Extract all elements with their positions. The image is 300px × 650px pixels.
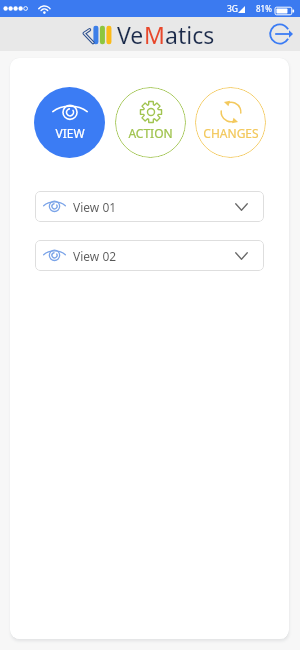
- button[interactable]: View 01: [35, 191, 264, 222]
- staticText: View 02: [73, 248, 117, 264]
- staticText: atics: [165, 19, 215, 50]
- staticText: Ve: [117, 19, 144, 50]
- staticText: 81%: [256, 3, 272, 14]
- button[interactable]: ACTION: [115, 87, 186, 158]
- button[interactable]: CHANGES: [195, 87, 266, 158]
- button[interactable]: Logout: [268, 20, 296, 48]
- button[interactable]: VIEW: [34, 87, 105, 158]
- staticText: CHANGES: [203, 125, 259, 141]
- staticText: M: [144, 19, 165, 50]
- staticText: View 01: [73, 199, 117, 215]
- button[interactable]: View 02: [35, 240, 264, 271]
- staticText: ACTION: [128, 125, 173, 141]
- staticText: 3G: [227, 3, 239, 15]
- staticText: VIEW: [55, 125, 85, 141]
